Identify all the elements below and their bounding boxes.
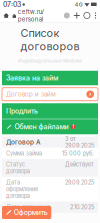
staticText: Оформить: [14, 208, 48, 217]
staticText: Договор А: [6, 138, 41, 146]
staticText: Сумма займа: [6, 150, 42, 157]
staticText: Статус договора: [6, 161, 30, 175]
staticText: 4G: [75, 1, 83, 8]
staticText: 2.10.2025: [70, 204, 94, 211]
button[interactable]: Account: [64, 12, 70, 18]
staticText: Обмен файлами: [14, 123, 68, 131]
staticText: Действует: [65, 161, 94, 168]
button[interactable]: Обмен файлами: [2, 119, 98, 134]
button[interactable]: ceftw.ru/personal: [18, 8, 44, 23]
button[interactable]: Продлить: [2, 103, 98, 119]
staticText: Дата оформления договора: [6, 179, 38, 199]
staticText: Список договоров: [20, 26, 79, 53]
staticText: 1: [72, 124, 74, 129]
button[interactable]: Оформить: [2, 206, 51, 219]
button[interactable]: Menu: [94, 12, 97, 19]
staticText: 3 от 29.09.2025: [65, 135, 94, 149]
staticText: Договор и займ: [6, 91, 56, 98]
staticText: 29.09.2025: [65, 179, 94, 186]
staticText: Индивидуальный Максим: [18, 58, 82, 64]
button[interactable]: Договор и займ: [2, 88, 98, 101]
button[interactable]: New tab: [74, 12, 80, 18]
staticText: Продлить: [6, 107, 38, 115]
staticText: ceftw.ru/personal: [18, 8, 44, 23]
staticText: 15 000 руб.: [62, 150, 94, 157]
staticText: Заявка на займ: [6, 74, 58, 82]
button[interactable]: Заявка на займ: [2, 71, 98, 85]
staticText: 07:03: [3, 0, 21, 9]
staticText: Дата погашения: [6, 204, 50, 211]
button[interactable]: Reload: [84, 12, 90, 19]
button[interactable]: Home: [3, 12, 9, 18]
